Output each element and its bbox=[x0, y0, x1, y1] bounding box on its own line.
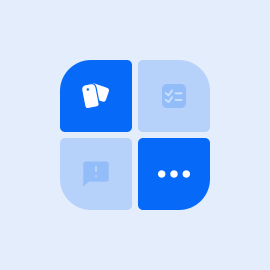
button[interactable]: Tags bbox=[60, 60, 132, 132]
button[interactable]: More bbox=[138, 138, 210, 210]
button[interactable]: Checklist bbox=[138, 60, 210, 132]
button[interactable]: Alerts bbox=[60, 138, 132, 210]
